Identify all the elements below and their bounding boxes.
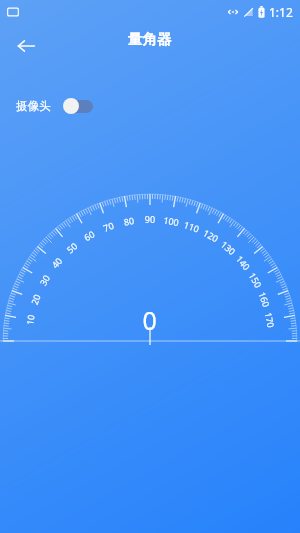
staticText: 1:12 <box>269 4 293 20</box>
button[interactable]: Back <box>8 28 44 64</box>
staticText: 摄像头 <box>16 99 51 113</box>
staticText: 量角器 <box>128 30 172 48</box>
button[interactable]: 摄像头 <box>14 96 95 116</box>
